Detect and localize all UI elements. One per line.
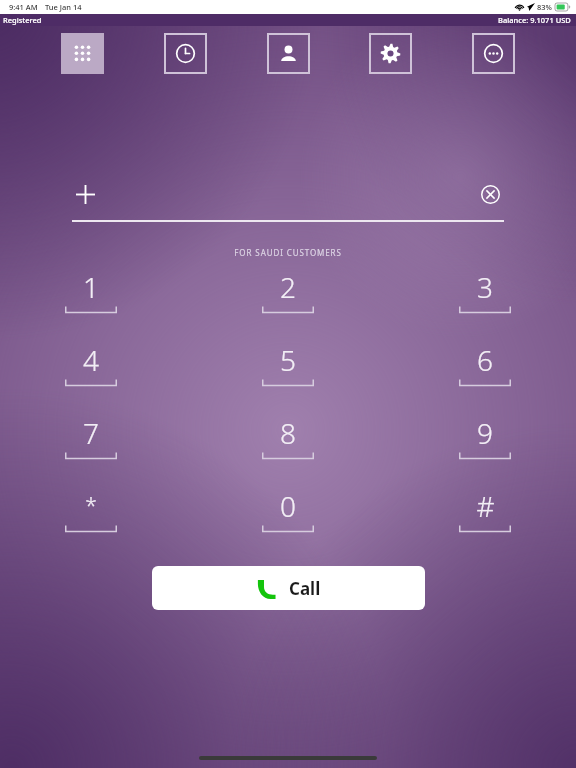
- staticText: Balance: 9.1071 USD: [498, 15, 571, 25]
- staticText: 1: [83, 268, 99, 305]
- button[interactable]: Settings: [369, 33, 412, 74]
- staticText: 9:41 AM: [9, 2, 38, 12]
- button[interactable]: 4: [60, 341, 122, 387]
- staticText: 2: [280, 268, 296, 305]
- button[interactable]: 5: [257, 341, 319, 387]
- button[interactable]: 0: [257, 487, 319, 533]
- button[interactable]: Contacts: [267, 33, 310, 74]
- staticText: 4: [83, 341, 99, 378]
- staticText: 8: [280, 414, 296, 451]
- button[interactable]: More options: [472, 33, 515, 74]
- staticText: 5: [280, 341, 296, 378]
- staticText: #: [476, 487, 495, 524]
- button[interactable]: 2: [257, 268, 319, 314]
- staticText: 83%: [537, 2, 552, 12]
- button[interactable]: Clear number: [477, 181, 504, 208]
- button[interactable]: *: [60, 487, 122, 533]
- button[interactable]: Call: [152, 566, 425, 610]
- staticText: 0: [280, 487, 296, 524]
- button[interactable]: Add plus: [72, 181, 99, 208]
- staticText: Call: [289, 577, 321, 600]
- button[interactable]: 1: [60, 268, 122, 314]
- button[interactable]: 3: [454, 268, 516, 314]
- staticText: FOR SAUDI CUSTOMERS: [0, 247, 576, 258]
- button[interactable]: 8: [257, 414, 319, 460]
- staticText: 3: [477, 268, 493, 305]
- button[interactable]: Keypad: [61, 33, 104, 74]
- staticText: Registered: [3, 15, 42, 25]
- button[interactable]: #: [454, 487, 516, 533]
- staticText: Tue Jan 14: [45, 2, 82, 12]
- staticText: *: [85, 491, 97, 520]
- button[interactable]: 6: [454, 341, 516, 387]
- button[interactable]: 7: [60, 414, 122, 460]
- button[interactable]: 9: [454, 414, 516, 460]
- staticText: 9: [477, 414, 493, 451]
- staticText: 7: [83, 414, 99, 451]
- button[interactable]: Recent calls: [164, 33, 207, 74]
- staticText: 6: [477, 341, 493, 378]
